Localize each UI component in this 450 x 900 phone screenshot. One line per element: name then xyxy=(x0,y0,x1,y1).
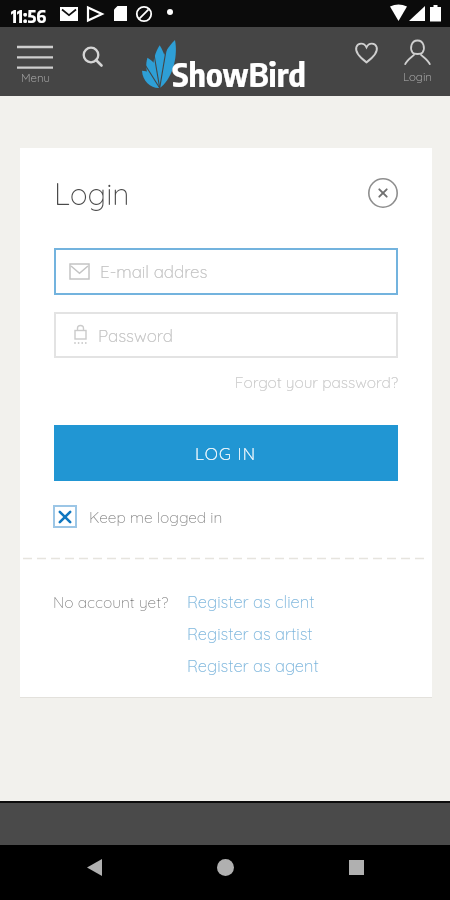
button[interactable]: Login xyxy=(398,40,437,83)
button[interactable]: Search xyxy=(76,40,106,70)
button[interactable]: LOG IN xyxy=(54,425,398,481)
staticText: Forgot your password? xyxy=(20,372,398,391)
button[interactable]: Register as client xyxy=(187,591,315,612)
button[interactable]: Keep me logged in xyxy=(53,500,223,532)
staticText: 11:56 xyxy=(11,4,47,26)
staticText: E-mail addres xyxy=(100,261,208,282)
staticText: Login xyxy=(403,69,432,83)
button[interactable]: Home xyxy=(203,845,247,889)
button[interactable]: Register as artist xyxy=(187,623,313,644)
button[interactable]: E-mail addres xyxy=(54,248,398,295)
staticText: Menu xyxy=(21,70,50,84)
staticText: ShowBird xyxy=(172,53,306,94)
button[interactable]: Recents xyxy=(334,845,378,889)
button[interactable]: Close xyxy=(367,177,399,209)
button[interactable]: Register as agent xyxy=(187,655,319,676)
button[interactable]: Menu xyxy=(17,44,53,84)
button[interactable]: Back xyxy=(72,845,116,889)
button[interactable]: Password xyxy=(54,312,398,358)
staticText: No account yet? xyxy=(53,592,169,611)
staticText: Keep me logged in xyxy=(89,507,223,526)
button[interactable]: Favorites xyxy=(350,37,382,67)
staticText: Login xyxy=(54,175,130,213)
staticText: LOG IN xyxy=(195,443,257,464)
staticText: Password xyxy=(98,325,173,346)
